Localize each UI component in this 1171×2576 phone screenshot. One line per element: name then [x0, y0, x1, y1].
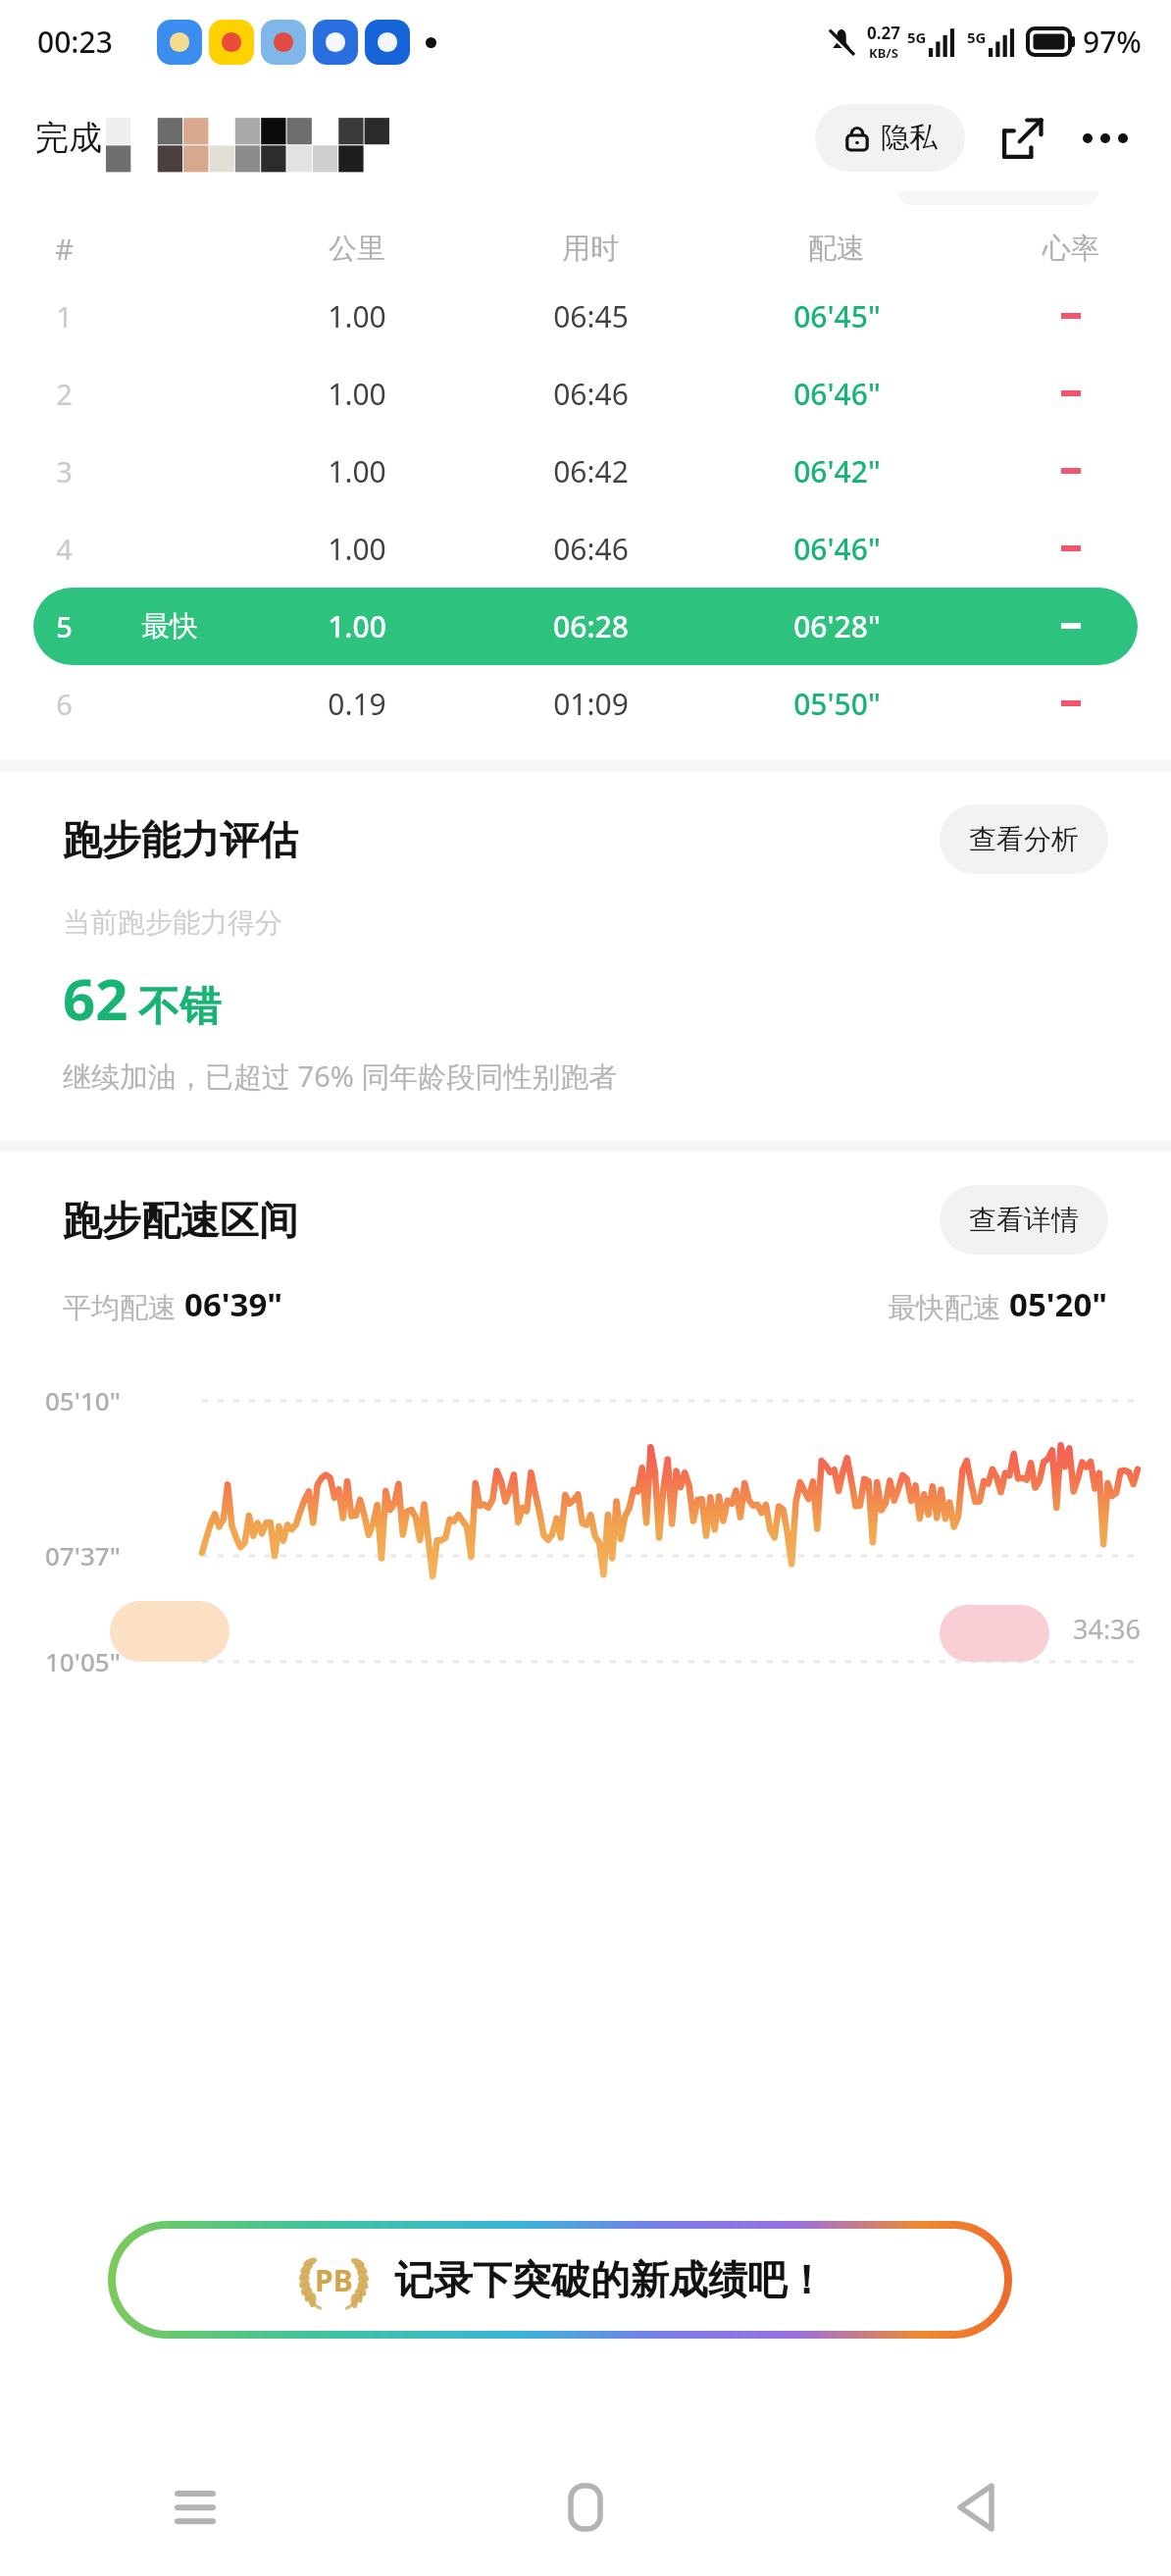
staticText: 62 [63, 959, 128, 1037]
button[interactable]: Home [390, 2439, 781, 2576]
staticText: 01:09 [553, 684, 629, 724]
staticText: 06:46 [553, 374, 629, 414]
staticText: 10'05" [45, 1644, 121, 1678]
staticText: 06'42" [793, 451, 881, 491]
staticText: 1.00 [328, 529, 386, 569]
staticText: 5G [967, 27, 987, 47]
staticText: 跑步能力评估 [63, 815, 298, 864]
staticText: 3 [56, 452, 73, 490]
staticText: 最快 [141, 608, 198, 644]
button[interactable]: Recents [0, 2439, 390, 2576]
staticText: 05'10" [45, 1383, 121, 1417]
staticText: 心率 [1043, 231, 1099, 267]
staticText: 0.19 [328, 684, 386, 724]
staticText: 06:42 [553, 451, 629, 491]
staticText: 00:23 [37, 22, 113, 62]
staticText: 记录下突破的新成绩吧！ [394, 2255, 826, 2304]
button[interactable]: More options [1069, 106, 1142, 171]
staticText: 5 [56, 607, 73, 645]
staticText: 07'37" [45, 1538, 121, 1572]
staticText: 1.00 [328, 606, 386, 646]
staticText: 4 [56, 530, 73, 568]
staticText: 隐私 [881, 120, 938, 156]
staticText: 继续加油，已超过 76% 同年龄段同性别跑者 [63, 1056, 618, 1096]
staticText: 当前跑步能力得分 [63, 905, 282, 940]
button[interactable]: 2 [33, 355, 1138, 433]
staticText: 06'45" [793, 296, 881, 336]
staticText: 不错 [138, 981, 221, 1033]
button[interactable]: 3 [33, 433, 1138, 510]
staticText: 公里 [329, 231, 385, 267]
staticText: PB [315, 2260, 353, 2300]
staticText: 06'46" [793, 374, 881, 414]
staticText: 0.27 [867, 22, 900, 44]
button[interactable]: 查看分析 [940, 804, 1108, 874]
button[interactable]: 隐私 [815, 104, 965, 172]
staticText: 完成 [35, 117, 102, 159]
staticText: # [55, 230, 74, 268]
staticText: 1 [56, 297, 73, 335]
button[interactable]: 查看详情 [940, 1185, 1108, 1255]
staticText: 1.00 [328, 296, 386, 336]
button[interactable]: 1 [33, 278, 1138, 355]
button[interactable]: Share [991, 106, 1055, 171]
staticText: 06'28" [793, 606, 881, 646]
staticText: 06:46 [553, 529, 629, 569]
staticText: 1.00 [328, 451, 386, 491]
staticText: 05'50" [793, 684, 881, 724]
staticText: 06'39" [184, 1282, 283, 1326]
button[interactable]: 4 [33, 510, 1138, 588]
staticText: 34:36 [1073, 1611, 1142, 1647]
staticText: KB/S [869, 44, 898, 62]
button[interactable]: 5 [33, 588, 1138, 665]
staticText: 平均配速 [63, 1287, 184, 1326]
staticText: 跑步配速区间 [63, 1196, 298, 1245]
staticText: 5G [907, 27, 927, 47]
staticText: 用时 [562, 231, 619, 267]
staticText: 2 [56, 375, 73, 413]
staticText: 配速 [808, 231, 865, 267]
button[interactable]: Back [781, 2439, 1171, 2576]
staticText: 05'20" [1009, 1282, 1108, 1326]
staticText: 查看详情 [969, 1203, 1079, 1237]
staticText: 6 [56, 685, 73, 723]
staticText: 06'46" [793, 529, 881, 569]
staticText: 查看分析 [969, 822, 1079, 856]
staticText: 最快配速 [888, 1287, 1009, 1326]
staticText: 06:28 [553, 606, 629, 646]
button[interactable]: 6 [33, 665, 1138, 743]
staticText: 97% [1083, 22, 1142, 62]
staticText: 1.00 [328, 374, 386, 414]
button[interactable]: PB [116, 2229, 1004, 2331]
staticText: 06:45 [553, 296, 629, 336]
